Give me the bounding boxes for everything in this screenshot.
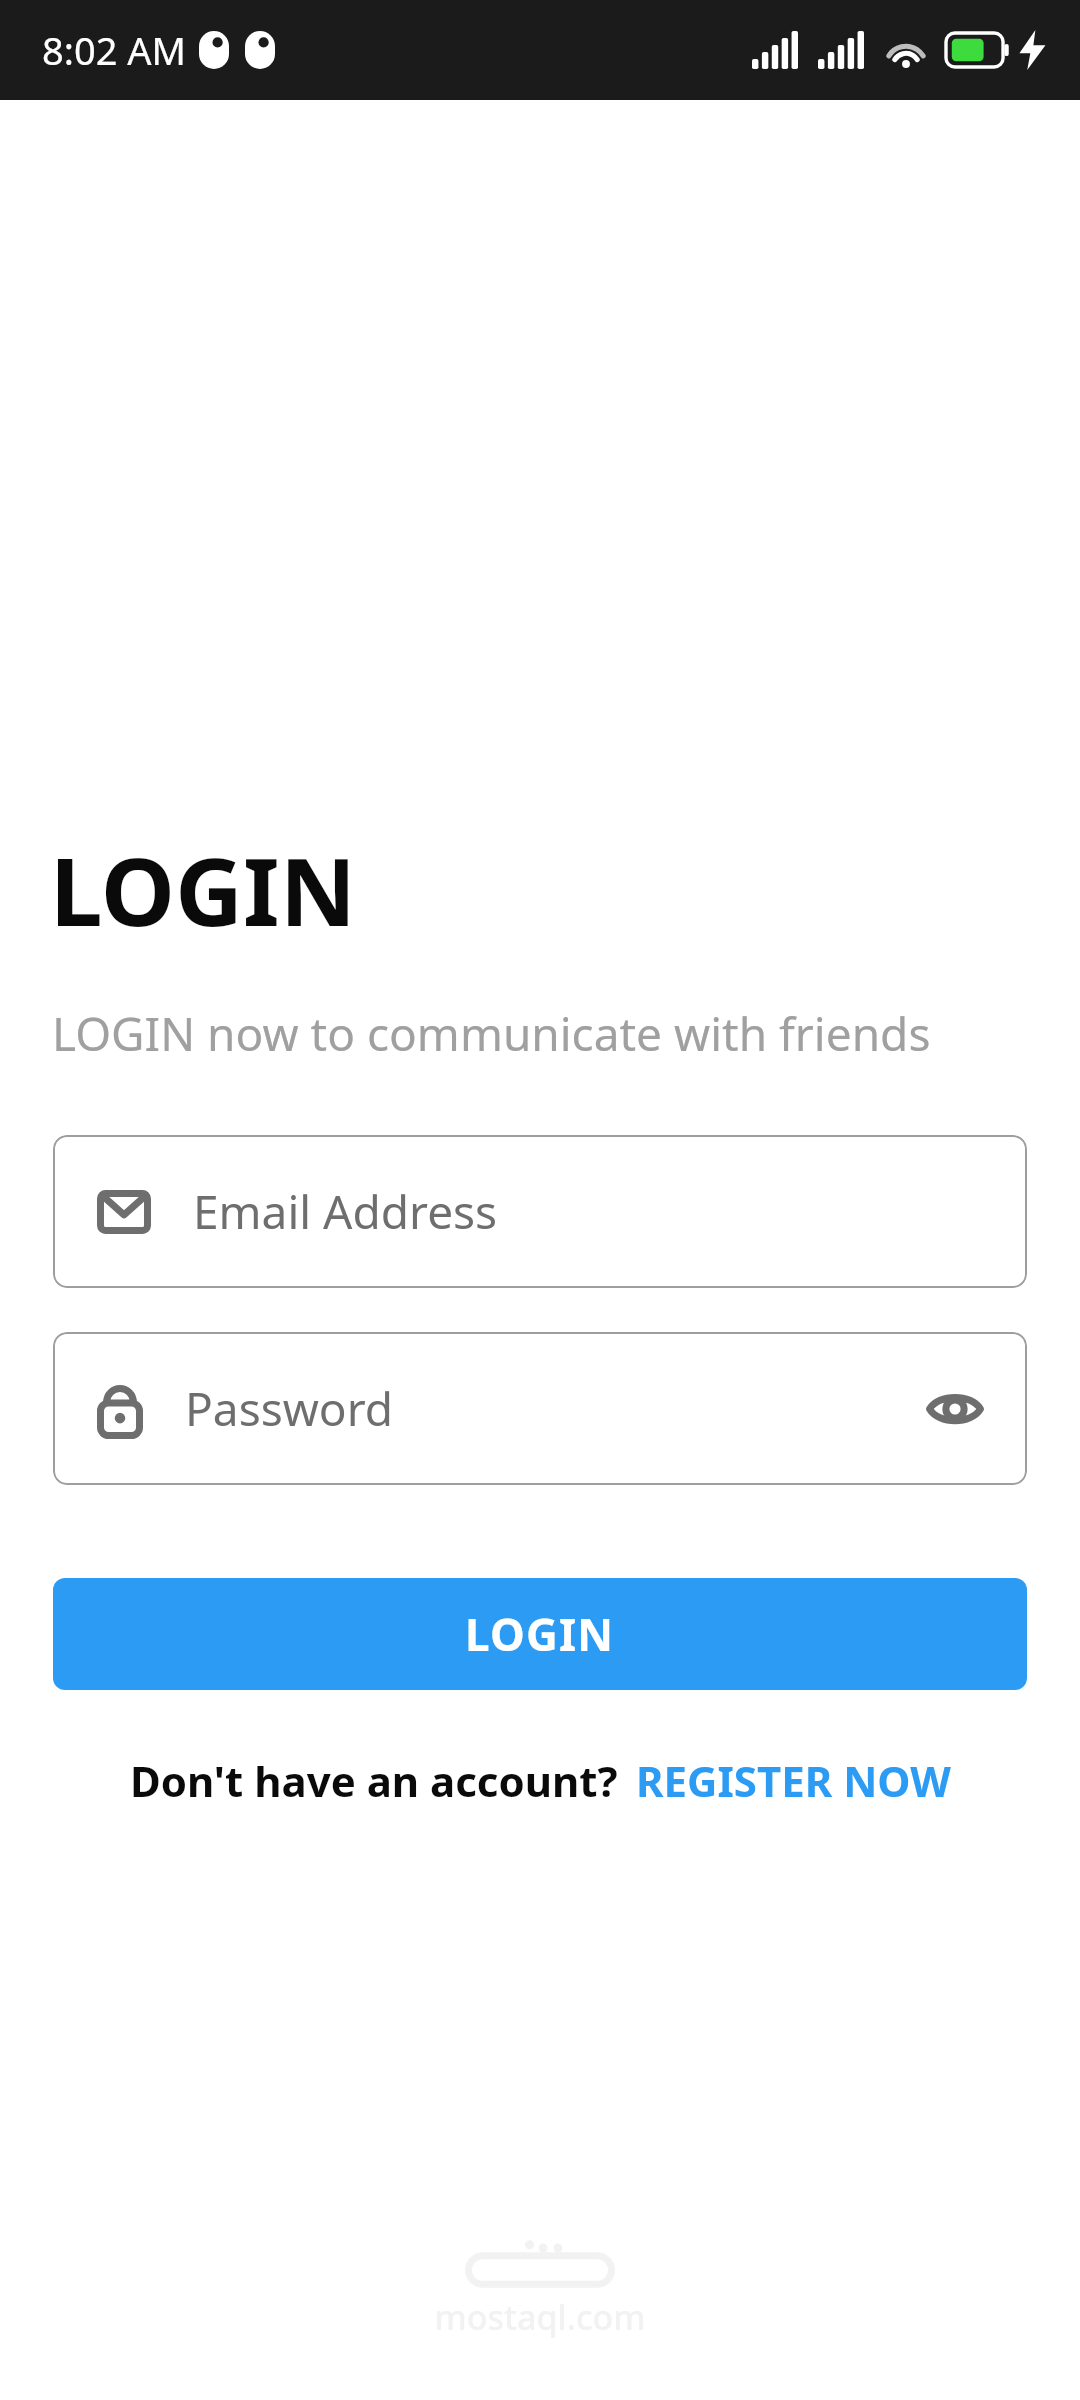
staticText: Don't have an account? <box>130 1752 618 1809</box>
staticText: 8:02 AM <box>42 24 187 76</box>
staticText: Email Address <box>193 1180 498 1243</box>
button[interactable]: Show password <box>923 1377 987 1441</box>
button[interactable]: Email Address field <box>53 1135 1027 1288</box>
staticText: REGISTER NOW <box>636 1752 951 1809</box>
staticText: LOGIN now to communicate with friends <box>52 1002 931 1065</box>
staticText: LOGIN <box>50 826 357 954</box>
staticText: Password <box>185 1377 394 1440</box>
button[interactable]: LOGIN <box>53 1578 1027 1690</box>
staticText: LOGIN <box>465 1604 615 1664</box>
staticText: mostaql.com <box>434 2294 646 2340</box>
button[interactable]: REGISTER NOW <box>636 1752 951 1809</box>
button[interactable]: Password field <box>53 1332 1027 1485</box>
